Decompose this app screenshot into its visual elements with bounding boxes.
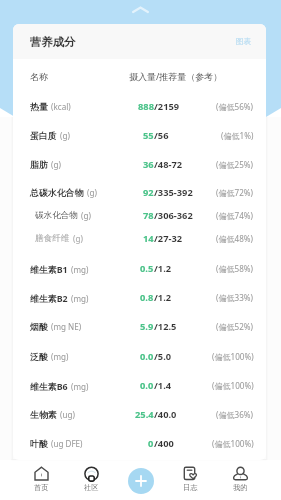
staticText: 78 <box>143 209 154 222</box>
staticText: (偏低100%) <box>212 438 254 449</box>
staticText: /48-72 <box>154 158 183 171</box>
staticText: /400 <box>154 437 174 450</box>
staticText: (g) <box>87 187 97 198</box>
button[interactable]: 维生素B6 <box>13 371 266 400</box>
staticText: (mg) <box>71 264 89 275</box>
staticText: 维生素B6 <box>30 380 68 392</box>
staticText: (偏低100%) <box>212 351 254 362</box>
staticText: /1.4 <box>154 379 172 392</box>
staticText: (g) <box>81 210 91 221</box>
staticText: (偏低72%) <box>216 187 254 198</box>
staticText: 脂肪 <box>30 159 48 170</box>
button[interactable]: 脂肪 <box>13 150 266 179</box>
staticText: 92 <box>143 186 154 199</box>
staticText: 碳水化合物 <box>35 210 78 221</box>
button[interactable]: 碳水化合物 <box>13 204 266 227</box>
staticText: (mg NE) <box>51 321 82 332</box>
staticText: (偏低1%) <box>221 130 254 141</box>
staticText: 烟酸 <box>30 321 48 332</box>
button[interactable]: 烟酸 <box>13 312 266 341</box>
staticText: 25.4 <box>135 408 154 421</box>
staticText: 首页 <box>34 483 49 492</box>
button[interactable]: Log <box>170 461 210 500</box>
staticText: /335-392 <box>154 186 193 199</box>
button[interactable]: 维生素B2 <box>13 283 266 312</box>
staticText: /2159 <box>154 100 180 113</box>
staticText: (偏低25%) <box>216 159 254 170</box>
staticText: (kcal) <box>51 101 71 112</box>
staticText: 叶酸 <box>30 438 48 449</box>
staticText: (偏低56%) <box>216 101 254 112</box>
staticText: 55 <box>143 129 154 142</box>
staticText: 摄入量/推荐量（参考） <box>129 70 223 82</box>
button[interactable]: Profile <box>220 461 260 500</box>
staticText: (g) <box>73 233 83 244</box>
staticText: 维生素B2 <box>30 292 68 304</box>
button[interactable]: 泛酸 <box>13 342 266 371</box>
staticText: 社区 <box>84 483 99 492</box>
staticText: 5.9 <box>140 320 154 333</box>
button[interactable]: 膳食纤维 <box>13 227 266 250</box>
staticText: 0.8 <box>140 291 154 304</box>
staticText: 膳食纤维 <box>35 233 70 244</box>
button[interactable]: 总碳水化合物 <box>13 178 266 207</box>
staticText: /12.5 <box>154 320 177 333</box>
staticText: 图表 <box>236 37 252 47</box>
staticText: 日志 <box>183 483 198 492</box>
staticText: /306-362 <box>154 209 193 222</box>
staticText: /56 <box>154 129 169 142</box>
button[interactable]: 维生素B1 <box>13 254 266 283</box>
staticText: 蛋白质 <box>30 130 57 141</box>
staticText: (偏低100%) <box>212 380 254 391</box>
staticText: /40.0 <box>154 408 177 421</box>
staticText: 14 <box>143 232 154 245</box>
staticText: 营养成分 <box>30 35 76 49</box>
staticText: (偏低33%) <box>216 292 254 303</box>
button[interactable]: Home <box>21 461 61 500</box>
button[interactable]: 生物素 <box>13 400 266 429</box>
staticText: (mg) <box>51 351 69 362</box>
staticText: 36 <box>143 158 154 171</box>
staticText: /27-32 <box>154 232 183 245</box>
button[interactable]: 蛋白质 <box>13 121 266 150</box>
staticText: (g) <box>51 159 61 170</box>
staticText: 泛酸 <box>30 351 48 362</box>
button[interactable]: Community <box>71 461 111 500</box>
staticText: (mg) <box>71 293 89 304</box>
button[interactable]: Add <box>128 468 154 494</box>
staticText: 0.0 <box>140 350 154 363</box>
button[interactable]: 图表 <box>232 33 256 51</box>
staticText: (偏低36%) <box>216 409 254 420</box>
staticText: (ug) <box>60 409 75 420</box>
staticText: 总碳水化合物 <box>30 187 84 198</box>
staticText: 名称 <box>30 71 48 82</box>
staticText: /1.2 <box>154 291 172 304</box>
staticText: 生物素 <box>30 409 57 420</box>
staticText: 0.0 <box>140 379 154 392</box>
staticText: (g) <box>60 130 70 141</box>
staticText: (偏低58%) <box>216 263 254 274</box>
staticText: 热量 <box>30 101 48 112</box>
staticText: (ug DFE) <box>51 438 83 449</box>
staticText: (偏低74%) <box>216 210 254 221</box>
staticText: 维生素B1 <box>30 263 68 275</box>
staticText: 0 <box>148 437 154 450</box>
button[interactable]: 叶酸 <box>13 429 266 458</box>
staticText: 我的 <box>233 483 248 492</box>
staticText: (mg) <box>71 381 89 392</box>
staticText: (偏低48%) <box>216 233 254 244</box>
staticText: (偏低52%) <box>216 321 254 332</box>
staticText: /1.2 <box>154 262 172 275</box>
button[interactable]: 热量 <box>13 92 266 121</box>
staticText: /5.0 <box>154 350 172 363</box>
staticText: 0.5 <box>140 262 154 275</box>
staticText: 888 <box>138 100 154 113</box>
